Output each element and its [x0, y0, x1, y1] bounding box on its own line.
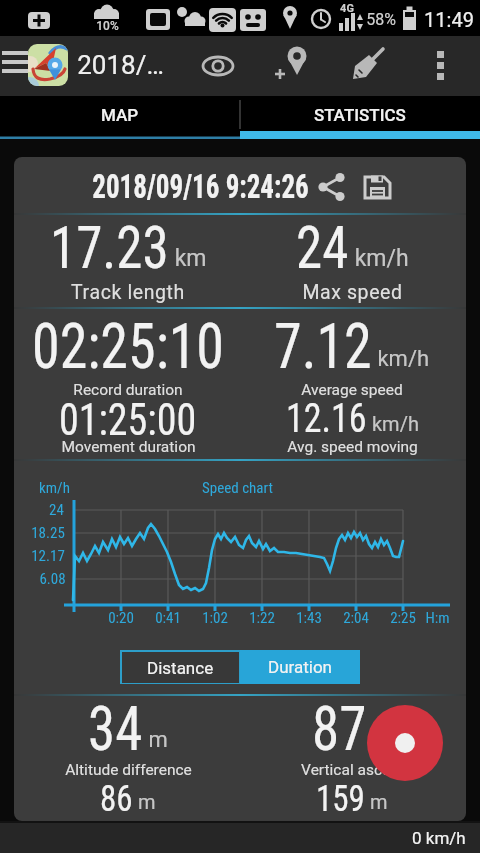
staticText: Speed chart: [202, 479, 273, 497]
staticText: 18.25: [31, 524, 65, 542]
button[interactable]: [271, 42, 319, 90]
staticText: Distance: [147, 658, 214, 678]
staticText: 17.23: [50, 213, 169, 283]
button[interactable]: [0, 40, 78, 92]
staticText: m: [365, 790, 388, 813]
staticText: 10%: [96, 19, 119, 33]
staticText: MAP: [101, 105, 139, 125]
button[interactable]: [424, 42, 464, 90]
button[interactable]: [318, 173, 348, 201]
staticText: 24: [296, 213, 349, 283]
staticText: km/h: [39, 479, 70, 497]
button[interactable]: [367, 705, 443, 781]
staticText: Max speed: [302, 281, 403, 304]
staticText: km/h: [367, 412, 419, 435]
staticText: km/h: [349, 245, 409, 272]
staticText: 01:25:00: [59, 393, 197, 446]
staticText: Track length: [71, 281, 185, 304]
button[interactable]: [346, 42, 394, 90]
staticText: H:m: [425, 609, 450, 627]
button[interactable]: [363, 173, 393, 201]
button[interactable]: Duration: [240, 650, 360, 684]
staticText: km: [169, 245, 207, 272]
staticText: STATISTICS: [314, 105, 406, 125]
staticText: 7.12: [274, 310, 372, 384]
staticText: m: [143, 727, 168, 753]
staticText: 2018/…: [77, 50, 164, 80]
staticText: 0:41: [155, 609, 181, 627]
staticText: 159: [316, 777, 365, 820]
staticText: km/h: [372, 346, 430, 372]
staticText: 2:04: [343, 609, 369, 627]
staticText: 12.16: [286, 395, 367, 442]
button[interactable]: MAP: [0, 96, 240, 139]
staticText: 1:22: [249, 609, 275, 627]
staticText: Altitude difference: [65, 761, 192, 779]
staticText: 1:43: [296, 609, 322, 627]
staticText: Record duration: [73, 381, 183, 399]
staticText: 11:49: [424, 8, 474, 31]
staticText: 87: [312, 693, 367, 765]
staticText: m: [133, 790, 156, 813]
staticText: 2:25: [390, 609, 416, 627]
staticText: m: [367, 727, 392, 753]
staticText: 0 km/h: [412, 828, 466, 848]
staticText: Vertical ascent: [301, 761, 404, 779]
staticText: 4G: [340, 2, 354, 15]
staticText: 86: [100, 777, 133, 820]
staticText: 24: [49, 501, 64, 519]
staticText: 1:02: [202, 609, 228, 627]
staticText: 6.08: [39, 570, 66, 588]
staticText: 02:25:10: [32, 310, 225, 384]
button[interactable]: STATISTICS: [240, 96, 480, 139]
staticText: Average speed: [301, 381, 403, 399]
staticText: 58%: [366, 10, 396, 29]
staticText: 0:20: [108, 609, 134, 627]
staticText: Avg. speed moving: [287, 438, 418, 456]
staticText: Movement duration: [61, 438, 196, 456]
button[interactable]: Distance: [120, 650, 240, 684]
button[interactable]: [194, 42, 242, 90]
staticText: 34: [88, 693, 143, 765]
button[interactable]: 2018/…: [60, 45, 180, 85]
staticText: 12.17: [31, 547, 65, 565]
staticText: 2018/09/16 9:24:26: [92, 168, 309, 206]
staticText: Duration: [268, 657, 332, 677]
